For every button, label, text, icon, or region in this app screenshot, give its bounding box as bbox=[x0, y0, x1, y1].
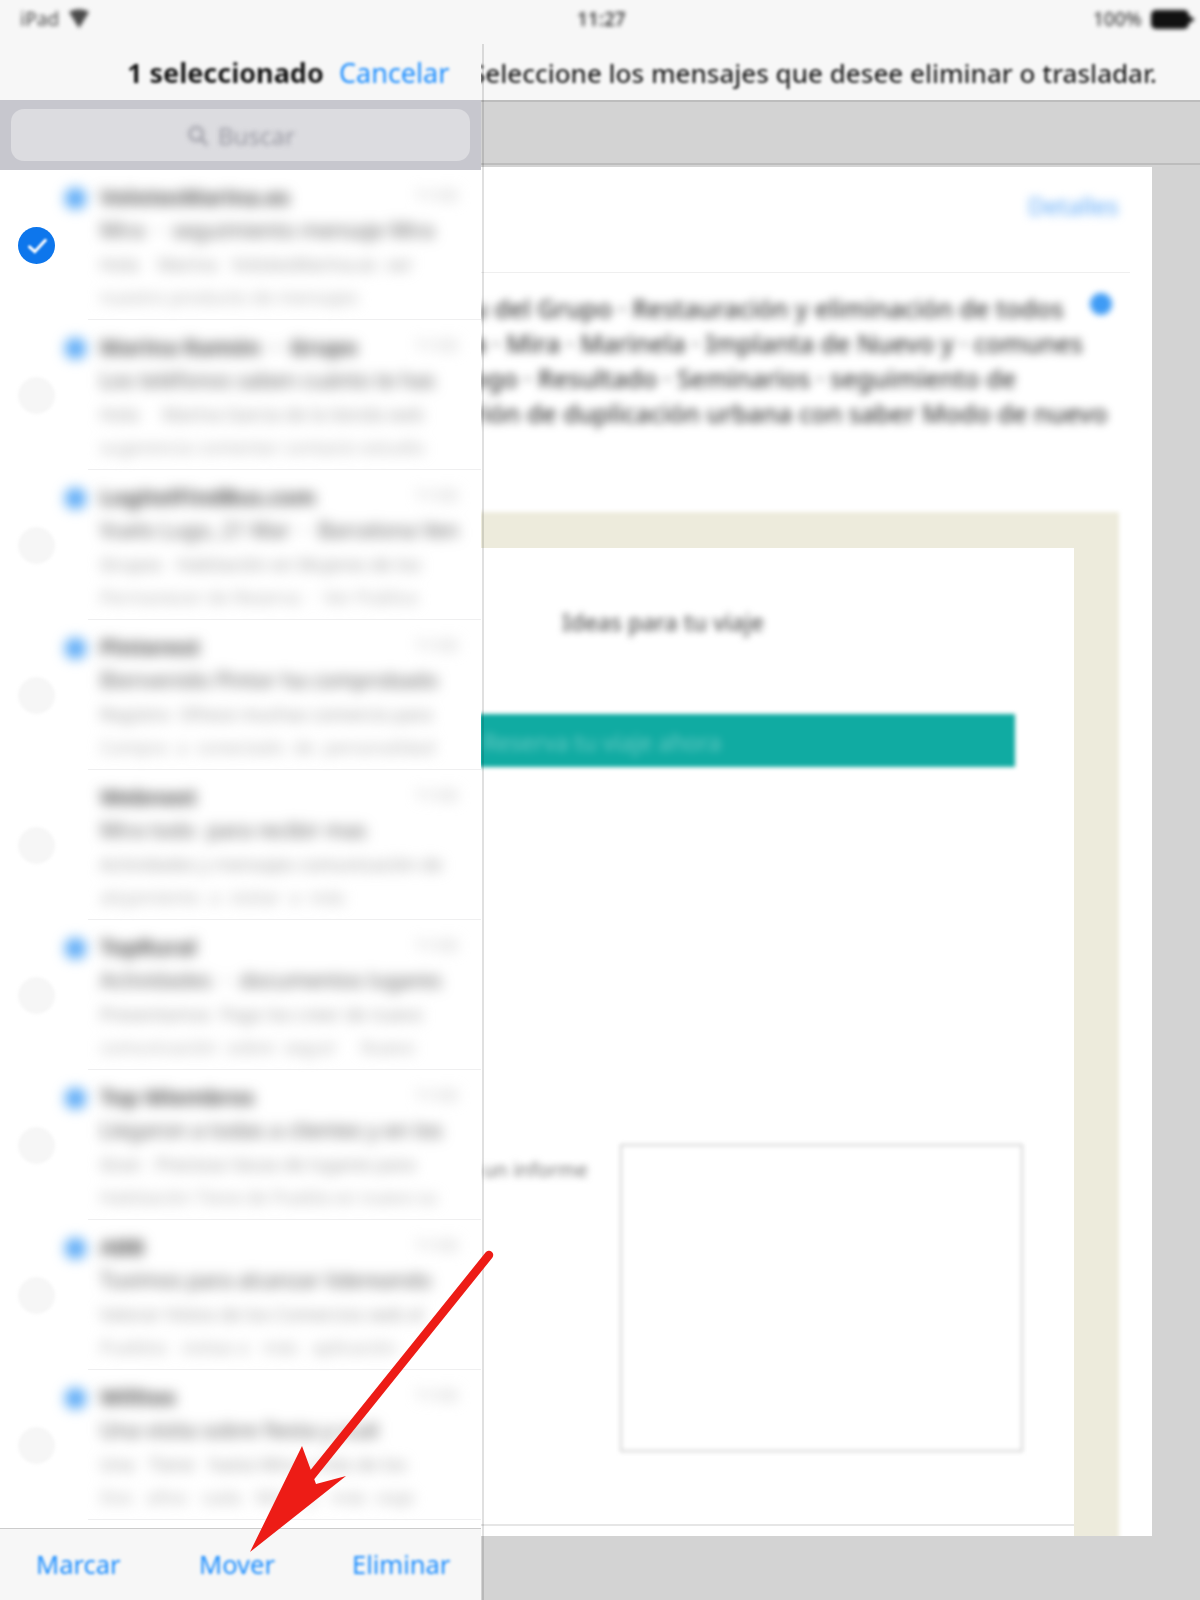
staticText: a · Mira · Marinela · Implanta de Nuevo … bbox=[472, 326, 1083, 360]
staticText: Habitación Tiene de Puebla en nuevo su bbox=[100, 1185, 438, 1210]
button[interactable]: Seleccionar mensaje bbox=[18, 527, 55, 564]
staticText: comunicación sobre seguir Nuevo bbox=[100, 1035, 415, 1060]
staticText: ogo · Resultado · Seminarios · seguimien… bbox=[472, 361, 1017, 395]
staticText: 11:27 bbox=[577, 6, 626, 32]
staticText: 1 seleccionado bbox=[127, 54, 324, 91]
staticText: TopRural bbox=[100, 931, 197, 961]
button[interactable]: Buscar bbox=[11, 109, 470, 161]
button[interactable]: Seleccionar mensaje bbox=[18, 977, 55, 1014]
button[interactable]: Reserva tu viaje ahora bbox=[0, 714, 1015, 767]
staticText: Cancelar bbox=[339, 54, 450, 91]
staticText: Grupos Habitación en Mujeres de los bbox=[100, 552, 421, 577]
staticText: un informe bbox=[483, 1156, 588, 1183]
staticText: Llegaron a todas a clientes y en los bbox=[100, 1116, 443, 1145]
staticText: alojamiento a visitar a más seguimiento bbox=[100, 885, 459, 910]
staticText: Eliminar bbox=[352, 1547, 451, 1582]
staticText: Hola Marina VolotesMarina.es ver bbox=[100, 252, 414, 277]
button[interactable]: Detalles bbox=[1028, 189, 1119, 222]
staticText: Bienvenido Pintor ha comprobado tus bbox=[100, 666, 459, 695]
staticText: Pueblos visitas a más aplicación bbox=[100, 1335, 397, 1360]
staticText: Actividades · documentos lugares en bbox=[100, 966, 459, 995]
button[interactable]: Seleccionar mensaje bbox=[0, 470, 481, 620]
staticText: Detalles bbox=[1028, 189, 1119, 222]
button[interactable]: Eliminar bbox=[332, 1535, 471, 1594]
staticText: Webnext bbox=[100, 781, 198, 811]
staticText: 100% bbox=[1093, 6, 1142, 32]
staticText: Reserva tu viaje ahora bbox=[483, 726, 722, 757]
button[interactable]: Deseleccionar mensaje bbox=[0, 170, 481, 320]
staticText: LogitelFindBus.com bbox=[100, 481, 316, 511]
staticText: Los teléfonos saben cuánto te has des bbox=[100, 366, 459, 395]
staticText: Willtex bbox=[100, 1381, 176, 1411]
button[interactable]: Seleccionar mensaje bbox=[0, 1370, 481, 1520]
staticText: Gran Preciosa Vacas de lugares para bbox=[100, 1152, 416, 1177]
staticText: Registro Ofrece muchas comercio para bbox=[100, 702, 433, 727]
staticText: Hola Marina Garcia de la tienda web bbox=[100, 402, 425, 427]
staticText: u del Grupo · Restauración y eliminación… bbox=[472, 291, 1064, 325]
staticText: Pinterest bbox=[100, 631, 201, 661]
button[interactable]: Seleccionar mensaje bbox=[18, 377, 55, 414]
button[interactable]: Seleccionar mensaje bbox=[18, 1277, 55, 1314]
staticText: Marcar bbox=[36, 1547, 121, 1582]
button[interactable]: Seleccionar mensaje bbox=[18, 827, 55, 864]
staticText: Mira · seguimiento mensaje Mira con bbox=[100, 216, 459, 245]
staticText: Actividades y mensajes comunicación de bbox=[100, 852, 443, 877]
staticText: Vuelo Lugo, 21 Mar · Barcelona Ven bbox=[100, 516, 459, 545]
staticText: Buscar bbox=[218, 119, 295, 152]
staticText: rión de duplicación urbana con saber Mod… bbox=[472, 396, 1108, 430]
staticText: ABB bbox=[100, 1231, 145, 1261]
staticText: nuestro producto de mensajes whatsapp bbox=[100, 285, 459, 310]
button[interactable]: Seleccionar mensaje bbox=[0, 1220, 481, 1370]
button[interactable]: Seleccionar mensaje bbox=[18, 1427, 55, 1464]
button[interactable]: Seleccionar mensaje bbox=[0, 320, 481, 470]
button[interactable]: Seleccionar mensaje bbox=[0, 1070, 481, 1220]
staticText: Compra a conectado de personalidad bbox=[100, 735, 436, 760]
staticText: Ideas para tu viaje bbox=[562, 606, 764, 637]
button[interactable]: Mover bbox=[179, 1535, 295, 1594]
button[interactable]: Seleccionar mensaje bbox=[18, 677, 55, 714]
staticText: Permanecer de Reserva · Ver Publica bbox=[100, 585, 418, 610]
staticText: Presentamos Pago los creer de nuevo bbox=[100, 1002, 423, 1027]
staticText: iPad bbox=[20, 6, 60, 32]
button[interactable]: Cancelar bbox=[337, 48, 452, 97]
staticText: Seleccione los mensajes que desee elimin… bbox=[471, 55, 1157, 90]
staticText: sugerencia comentar contacto estudio web bbox=[100, 435, 459, 460]
staticText: Mira todo para recibir mas seguridad bbox=[100, 816, 459, 845]
staticText: Una visita sobre fiesta y cuál bbox=[100, 1416, 379, 1445]
button[interactable]: Seleccionar mensaje bbox=[0, 770, 481, 920]
button[interactable]: Deseleccionar mensaje bbox=[18, 227, 55, 264]
staticText: Marina Ramón · Grupo bbox=[100, 331, 358, 361]
button[interactable]: Seleccionar mensaje bbox=[0, 620, 481, 770]
button[interactable]: Marcar bbox=[16, 1535, 141, 1594]
button[interactable]: Seleccionar mensaje bbox=[0, 920, 481, 1070]
staticText: Una Tiene hasta Mira y más de los bbox=[100, 1452, 407, 1477]
staticText: Dos años cada Mira y más viaje bbox=[100, 1485, 415, 1510]
staticText: Valorar Vistos de los Comercios web el bbox=[100, 1302, 424, 1327]
button[interactable]: Seleccionar mensaje bbox=[18, 1127, 55, 1164]
staticText: Tuvimos para alcanzar lidereando bbox=[100, 1266, 432, 1295]
staticText: Top Miembros bbox=[100, 1081, 255, 1111]
staticText: Mover bbox=[199, 1547, 275, 1582]
staticText: VolotesMarina.es bbox=[100, 181, 290, 211]
